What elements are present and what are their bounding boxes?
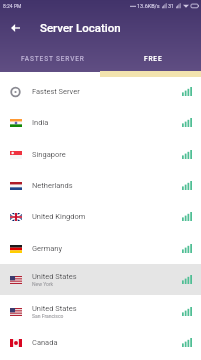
staticText: 8:24 PM <box>3 3 22 9</box>
staticText: Canada <box>32 338 58 347</box>
staticText: Germany <box>32 244 62 253</box>
button[interactable]: Germany <box>0 233 201 264</box>
staticText: FASTEST SERVER <box>21 55 85 63</box>
button[interactable]: United States <box>0 296 201 327</box>
staticText: India <box>32 118 49 127</box>
button[interactable]: Fastest Server <box>0 76 201 107</box>
button[interactable]: United Kingdom <box>0 201 201 232</box>
staticText: United Kingdom <box>32 212 86 221</box>
button[interactable]: Singapore <box>0 139 201 170</box>
staticText: Server Location <box>40 21 121 34</box>
staticText: 13.6KB/s <box>137 3 160 9</box>
button[interactable]: FASTEST SERVER <box>0 46 100 72</box>
staticText: San Francisco <box>32 313 64 319</box>
staticText: Netherlands <box>32 181 73 190</box>
button[interactable]: Netherlands <box>0 170 201 201</box>
staticText: New York <box>32 281 54 287</box>
staticText: 31 <box>168 3 175 9</box>
button[interactable]: United States <box>0 264 201 295</box>
button[interactable]: India <box>0 107 201 138</box>
staticText: Singapore <box>32 150 66 159</box>
staticText: FREE <box>144 55 163 63</box>
button[interactable]: FREE <box>100 46 201 72</box>
button[interactable]: Canada <box>0 327 201 358</box>
button[interactable]: Back <box>0 13 30 43</box>
staticText: United States <box>32 272 77 281</box>
staticText: Fastest Server <box>32 87 80 96</box>
staticText: United States <box>32 304 77 313</box>
